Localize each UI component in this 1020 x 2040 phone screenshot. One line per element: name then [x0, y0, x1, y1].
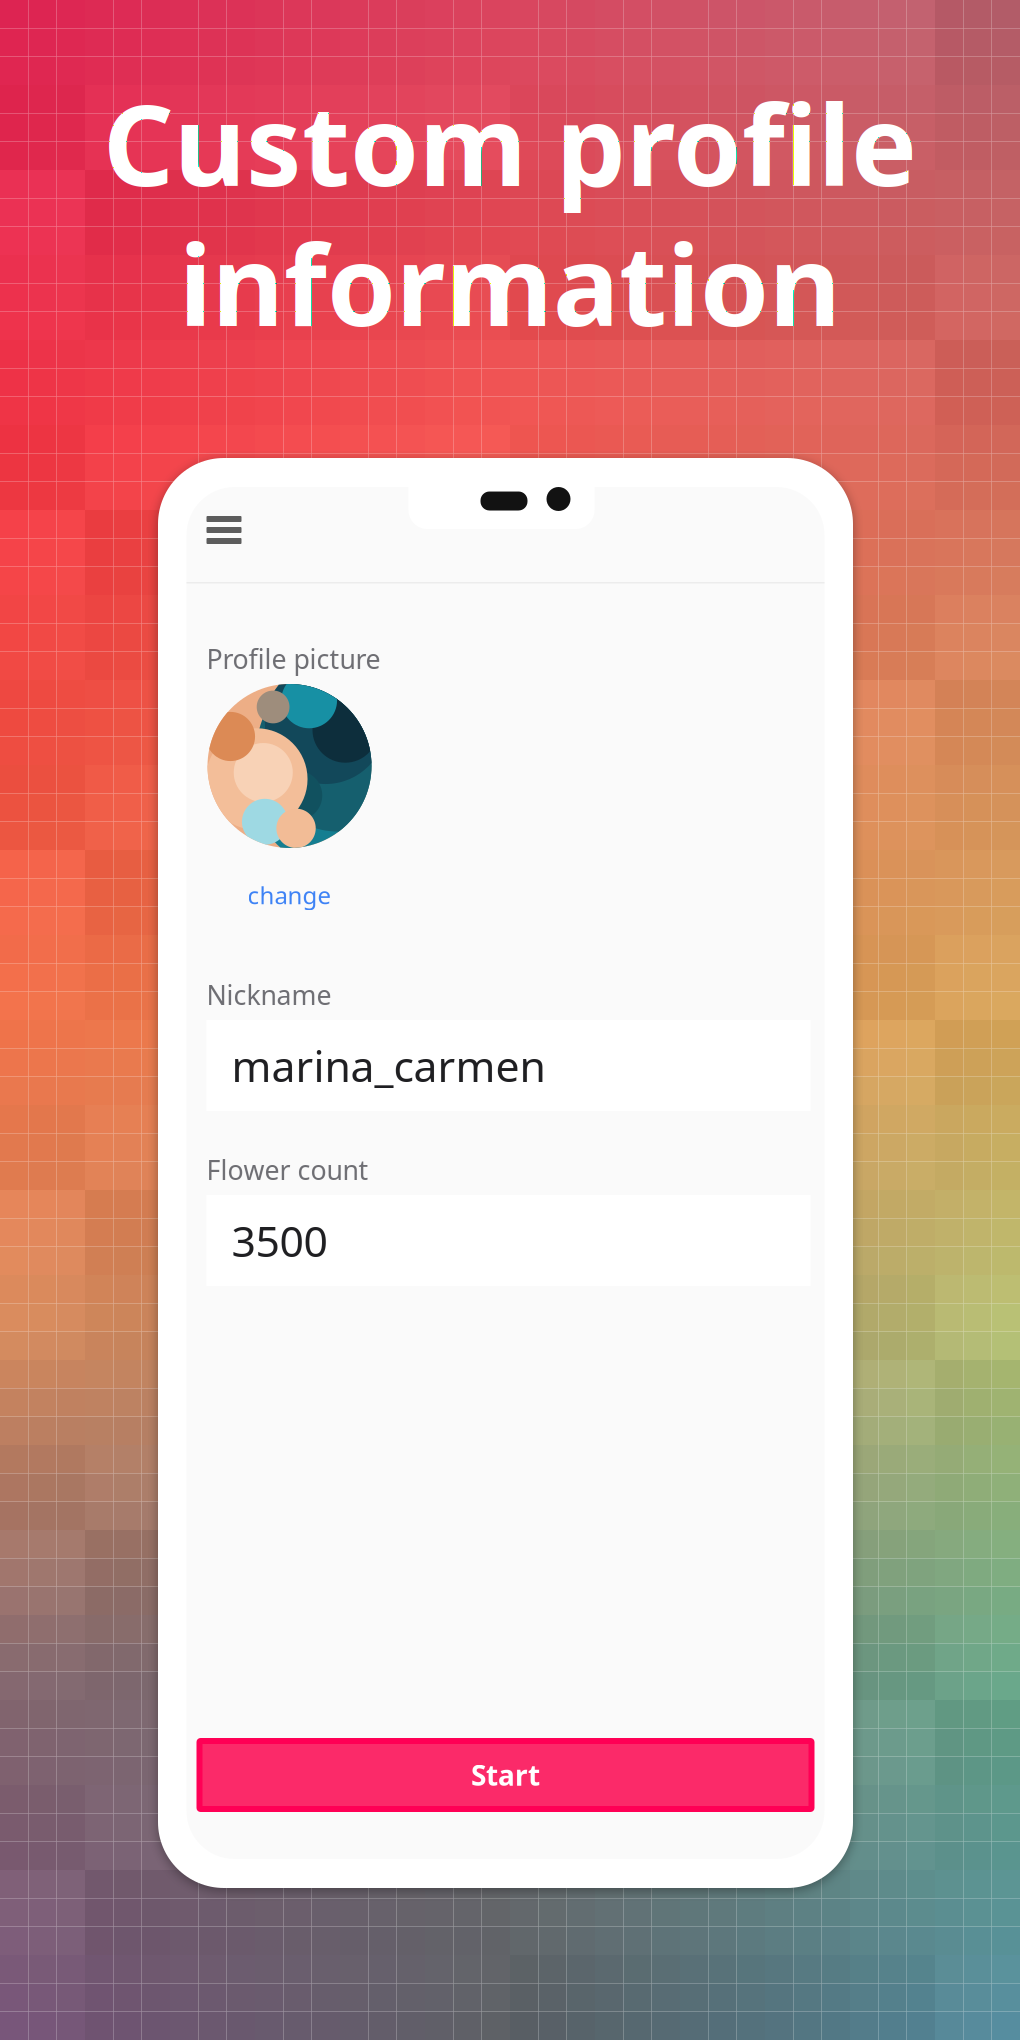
staticText: 3500: [231, 1212, 327, 1269]
staticText: change: [247, 879, 331, 911]
staticText: Flower count: [206, 1152, 368, 1187]
staticText: marina_carmen: [231, 1037, 545, 1094]
staticText: Custom profile: [103, 69, 917, 216]
staticText: Profile picture: [206, 641, 380, 676]
button[interactable]: change: [239, 873, 339, 917]
staticText: information: [179, 209, 841, 356]
staticText: Nickname: [206, 977, 331, 1012]
staticText: Start: [471, 1756, 540, 1794]
button[interactable]: Menu: [194, 502, 253, 558]
button[interactable]: Start: [199, 1741, 811, 1809]
